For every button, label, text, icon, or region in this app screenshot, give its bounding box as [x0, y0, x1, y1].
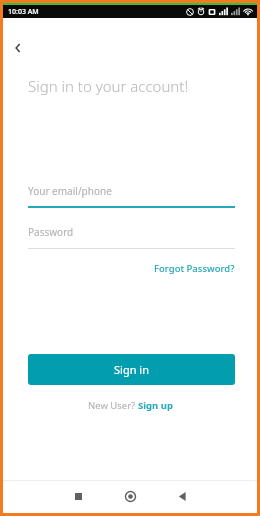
staticText: New User? [88, 399, 138, 412]
button[interactable]: Home [113, 480, 147, 513]
button[interactable]: Sign in [28, 354, 235, 385]
staticText: Forgot Password? [154, 262, 235, 275]
button[interactable]: Sign up [138, 399, 173, 412]
button[interactable]: Recent apps [61, 480, 95, 513]
button[interactable]: Back [165, 480, 199, 513]
staticText: Sign in to your account! [28, 76, 189, 96]
staticText: 10:03 AM [8, 7, 39, 17]
button[interactable]: Back [7, 37, 29, 59]
button[interactable]: Your email/phone [28, 178, 235, 208]
button[interactable]: Password [28, 219, 235, 249]
button[interactable]: Forgot Password? [143, 258, 235, 278]
staticText: Sign up [138, 399, 173, 412]
staticText: Sign in [114, 362, 149, 377]
staticText: Password [28, 225, 74, 239]
staticText: Your email/phone [28, 184, 112, 198]
